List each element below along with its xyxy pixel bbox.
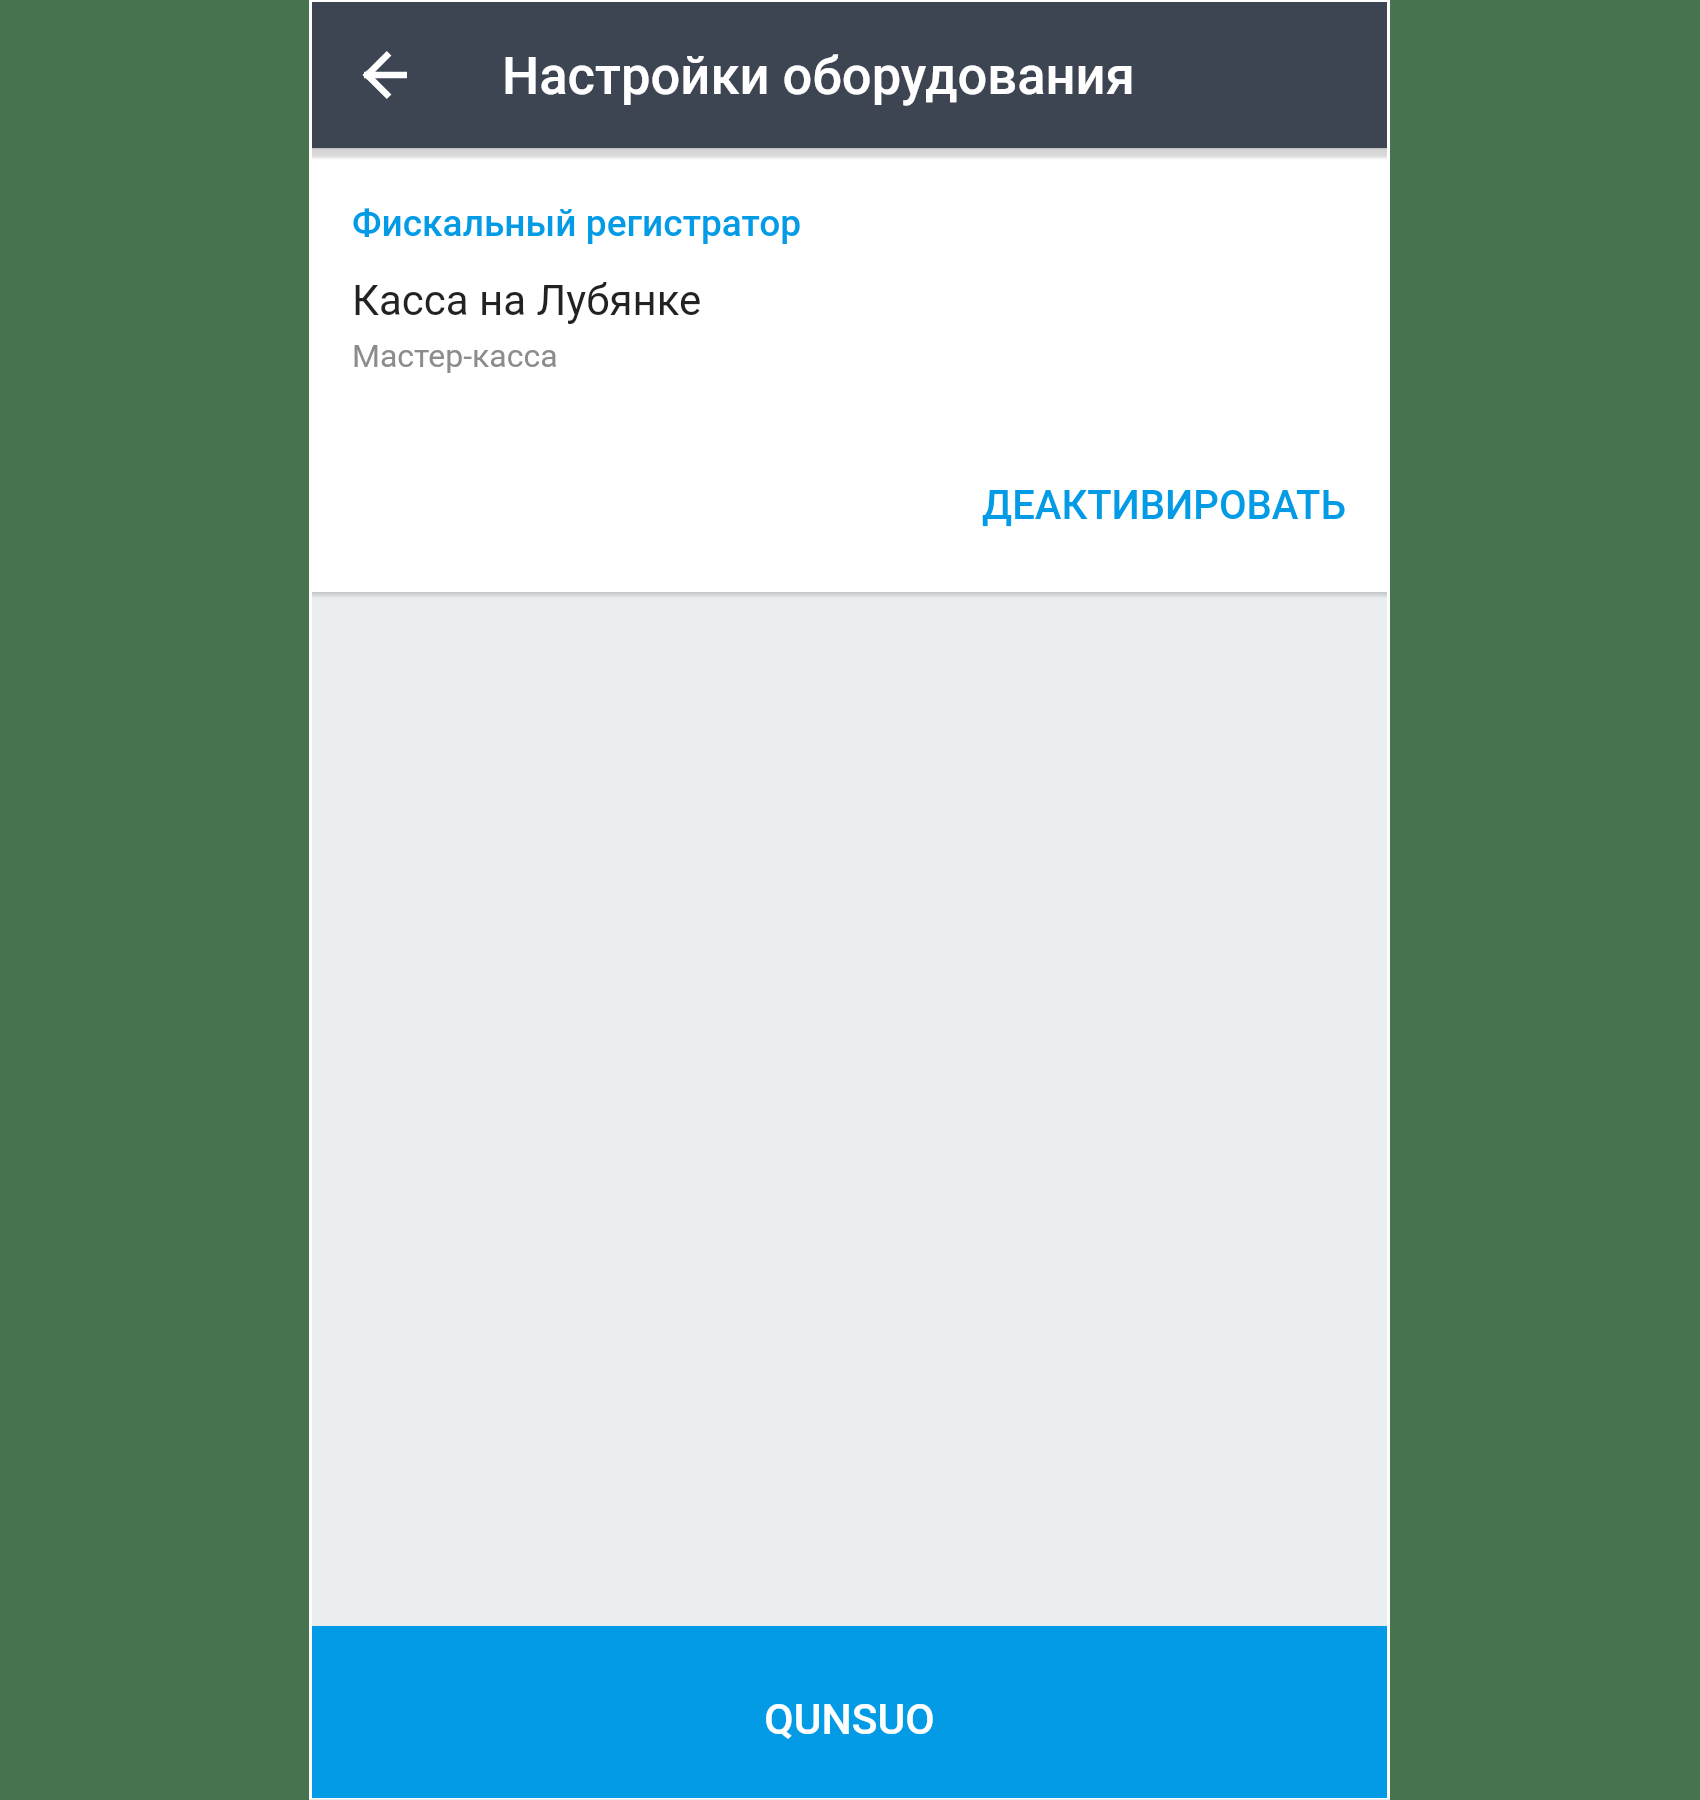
staticText: Касса на Лубянке [352,276,702,325]
button[interactable]: ДЕАКТИВИРОВАТЬ [966,466,1362,545]
staticText: QUNSUO [764,1694,935,1744]
staticText: Фискальный регистратор [352,202,802,245]
staticText: Настройки оборудования [502,45,1135,106]
staticText: ДЕАКТИВИРОВАТЬ [982,482,1346,529]
button[interactable]: QUNSUO [312,1626,1387,1798]
staticText: Мастер-касса [352,337,558,375]
button[interactable]: Back [349,39,421,111]
